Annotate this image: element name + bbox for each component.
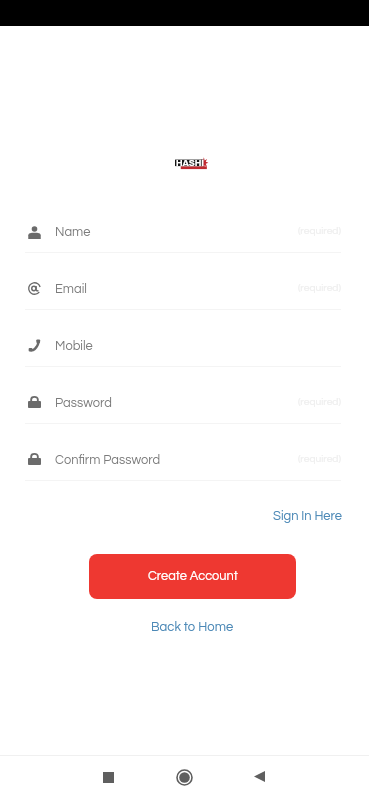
button[interactable]: Confirm Password (0, 425, 369, 481)
button[interactable]: Home (176, 769, 193, 786)
button[interactable]: Back to Home (148, 616, 237, 637)
button[interactable]: Create Account (89, 554, 296, 599)
staticText: (required) (298, 397, 341, 408)
button[interactable]: Back (254, 771, 265, 782)
staticText: Confirm Password (55, 453, 161, 466)
staticText: (required) (298, 226, 341, 237)
staticText: Name (55, 225, 91, 238)
button[interactable]: Email (0, 254, 369, 310)
staticText: Mobile (55, 339, 93, 352)
button[interactable]: Mobile (0, 311, 369, 367)
staticText: Create Account (148, 570, 238, 583)
staticText: Sign In Here (273, 509, 343, 522)
button[interactable]: Name (0, 197, 369, 253)
button[interactable]: Password (0, 368, 369, 424)
staticText: Back to Home (151, 620, 234, 633)
staticText: HASHI (176, 158, 204, 168)
staticText: Password (55, 396, 112, 409)
staticText: (required) (298, 454, 341, 465)
button[interactable]: Sign In Here (272, 505, 344, 526)
staticText: (required) (298, 283, 341, 294)
staticText: Email (55, 282, 87, 295)
